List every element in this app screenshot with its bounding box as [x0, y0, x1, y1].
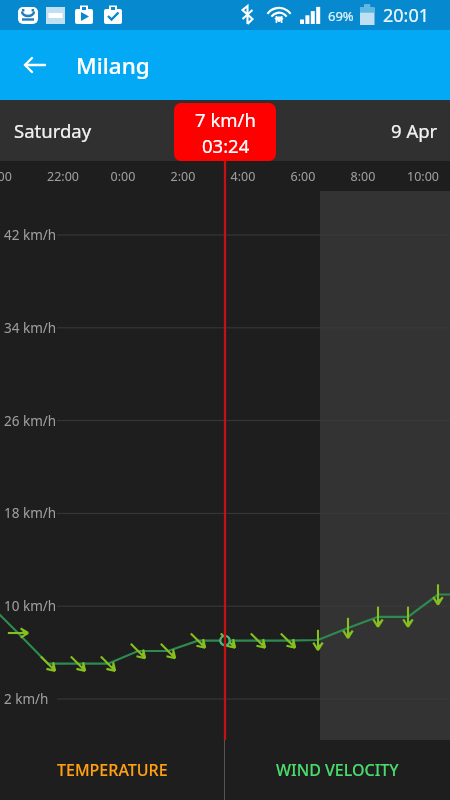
staticText: 22:00: [33, 168, 93, 185]
staticText: TEMPERATURE: [57, 759, 168, 781]
staticText: 10:00: [393, 168, 450, 185]
staticText: :00: [0, 168, 33, 185]
staticText: Saturday: [14, 118, 92, 143]
staticText: 7 km/h: [195, 107, 256, 132]
staticText: 2:00: [153, 168, 213, 185]
staticText: 10 km/h: [4, 597, 57, 615]
staticText: 8:00: [333, 168, 393, 185]
button[interactable]: 7 km/h: [174, 103, 276, 161]
staticText: 69%: [328, 7, 354, 25]
staticText: 18 km/h: [4, 504, 57, 522]
button[interactable]: TEMPERATURE: [0, 740, 225, 800]
staticText: 03:24: [202, 133, 250, 158]
staticText: 4:00: [213, 168, 273, 185]
staticText: 6:00: [273, 168, 333, 185]
staticText: 20:01: [383, 3, 430, 28]
button[interactable]: WIND VELOCITY: [225, 740, 450, 800]
button[interactable]: Back: [13, 43, 57, 87]
staticText: 0:00: [93, 168, 153, 185]
staticText: 42 km/h: [4, 226, 57, 244]
staticText: 34 km/h: [4, 319, 57, 337]
staticText: 9 Apr: [391, 118, 438, 143]
staticText: WIND VELOCITY: [276, 759, 399, 781]
staticText: 2 km/h: [4, 690, 49, 708]
staticText: Milang: [76, 50, 150, 81]
staticText: 26 km/h: [4, 412, 57, 430]
